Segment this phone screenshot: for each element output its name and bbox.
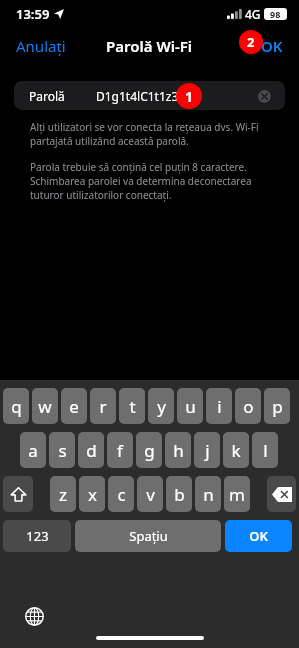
button[interactable]: k xyxy=(223,432,249,468)
button[interactable]: t xyxy=(119,388,145,424)
staticText: 4G xyxy=(245,6,261,22)
button[interactable]: e xyxy=(61,388,87,424)
staticText: e xyxy=(69,395,79,418)
button[interactable]: Clear text xyxy=(257,89,271,103)
button[interactable]: i xyxy=(206,388,232,424)
button[interactable]: b xyxy=(166,476,192,512)
button[interactable]: y xyxy=(148,388,174,424)
button[interactable]: c xyxy=(108,476,134,512)
staticText: Alți utilizatori se vor conecta la rețea… xyxy=(30,120,269,148)
staticText: c xyxy=(117,483,126,506)
staticText: x xyxy=(88,483,97,506)
button[interactable]: n xyxy=(195,476,221,512)
staticText: q xyxy=(11,395,22,418)
button[interactable]: f xyxy=(107,432,133,468)
staticText: 13:59 xyxy=(16,5,50,23)
staticText: z xyxy=(59,483,67,506)
button[interactable]: r xyxy=(90,388,116,424)
button[interactable]: x xyxy=(79,476,105,512)
button[interactable]: h xyxy=(165,432,191,468)
staticText: d xyxy=(86,439,97,462)
button[interactable]: m xyxy=(224,476,250,512)
button[interactable]: Shift xyxy=(3,476,33,512)
button[interactable]: j xyxy=(194,432,220,468)
staticText: f xyxy=(117,439,123,462)
button[interactable]: Backspace xyxy=(267,476,296,512)
staticText: Parola trebuie să conțină cel puțin 8 ca… xyxy=(30,160,269,202)
staticText: a xyxy=(28,439,38,462)
button[interactable]: Anulați xyxy=(14,32,68,60)
staticText: u xyxy=(185,395,196,418)
staticText: p xyxy=(272,395,283,418)
staticText: D1g1t4lC1t1z3n xyxy=(96,88,186,104)
staticText: y xyxy=(157,395,166,418)
button[interactable]: z xyxy=(50,476,76,512)
staticText: Parolă xyxy=(29,88,65,104)
button[interactable]: w xyxy=(32,388,58,424)
button[interactable]: Change keyboard language xyxy=(22,604,46,628)
button[interactable]: q xyxy=(3,388,29,424)
button[interactable]: Spațiu xyxy=(75,520,221,552)
staticText: b xyxy=(174,483,185,506)
staticText: Parolă Wi-Fi xyxy=(106,36,193,56)
button[interactable]: v xyxy=(137,476,163,512)
staticText: s xyxy=(58,439,67,462)
staticText: OK xyxy=(249,527,268,545)
button[interactable]: OK xyxy=(259,32,285,60)
staticText: i xyxy=(217,395,222,418)
staticText: OK xyxy=(261,36,283,56)
staticText: 98 xyxy=(270,8,281,20)
button[interactable]: o xyxy=(235,388,261,424)
button[interactable]: s xyxy=(49,432,75,468)
staticText: t xyxy=(129,395,136,418)
staticText: k xyxy=(231,439,241,462)
staticText: 123 xyxy=(26,527,49,545)
staticText: 1 xyxy=(185,87,194,106)
button[interactable]: OK xyxy=(225,520,292,552)
button[interactable]: a xyxy=(20,432,46,468)
button[interactable]: d xyxy=(78,432,104,468)
staticText: g xyxy=(144,439,155,462)
button[interactable]: Parolă xyxy=(14,81,285,110)
button[interactable]: l xyxy=(252,432,278,468)
button[interactable]: u xyxy=(177,388,203,424)
staticText: l xyxy=(263,439,268,462)
staticText: h xyxy=(173,439,184,462)
staticText: j xyxy=(205,439,210,462)
button[interactable]: g xyxy=(136,432,162,468)
button[interactable]: 123 xyxy=(3,520,71,552)
staticText: n xyxy=(203,483,214,506)
staticText: v xyxy=(146,483,155,506)
button[interactable]: p xyxy=(264,388,290,424)
staticText: r xyxy=(99,395,107,418)
staticText: w xyxy=(38,395,52,418)
staticText: Anulați xyxy=(16,36,66,56)
staticText: m xyxy=(229,483,245,506)
staticText: Spațiu xyxy=(129,527,168,545)
staticText: o xyxy=(243,395,254,418)
staticText: 2 xyxy=(247,33,255,51)
